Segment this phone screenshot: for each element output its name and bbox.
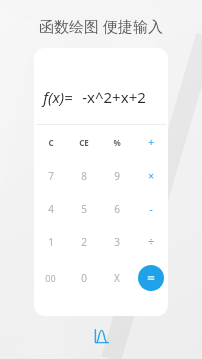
staticText: CE — [79, 137, 89, 148]
button[interactable]: × — [134, 159, 168, 192]
staticText: - — [149, 202, 153, 216]
staticText: 1 — [48, 235, 54, 249]
button[interactable]: 3 — [100, 225, 134, 258]
staticText: 函数绘图 便捷输入 — [39, 16, 163, 36]
button[interactable]: f(x)= — [34, 48, 168, 124]
staticText: X — [114, 271, 120, 285]
staticText: 8 — [81, 169, 87, 183]
staticText: + — [148, 135, 154, 149]
staticText: 9 — [114, 169, 120, 183]
staticText: 4 — [48, 202, 54, 216]
staticText: % — [113, 137, 121, 148]
staticText: 6 — [114, 202, 120, 216]
button[interactable]: Equals — [138, 265, 164, 291]
button[interactable]: 8 — [67, 159, 100, 192]
staticText: ÷ — [148, 235, 154, 249]
button[interactable]: 5 — [67, 192, 100, 225]
staticText: -x^2+x+2 — [82, 87, 146, 107]
button[interactable]: Plot graph — [90, 325, 112, 347]
staticText: 5 — [81, 202, 87, 216]
staticText: 2 — [81, 235, 87, 249]
staticText: 0 — [81, 271, 87, 285]
staticText: 7 — [48, 169, 54, 183]
button[interactable]: X — [100, 258, 134, 298]
staticText: C — [48, 137, 54, 148]
button[interactable]: 4 — [34, 192, 67, 225]
button[interactable]: - — [134, 192, 168, 225]
button[interactable]: C — [34, 125, 67, 159]
button[interactable]: % — [100, 125, 134, 159]
button[interactable]: + — [134, 125, 168, 159]
button[interactable]: 9 — [100, 159, 134, 192]
button[interactable]: 1 — [34, 225, 67, 258]
button[interactable]: 7 — [34, 159, 67, 192]
button[interactable]: 00 — [34, 258, 67, 298]
button[interactable]: CE — [67, 125, 100, 159]
button[interactable]: 6 — [100, 192, 134, 225]
staticText: f(x)= — [43, 87, 73, 107]
staticText: × — [148, 169, 154, 183]
button[interactable]: 2 — [67, 225, 100, 258]
button[interactable]: 0 — [67, 258, 100, 298]
staticText: 00 — [45, 272, 56, 284]
staticText: 3 — [114, 235, 120, 249]
button[interactable]: ÷ — [134, 225, 168, 258]
